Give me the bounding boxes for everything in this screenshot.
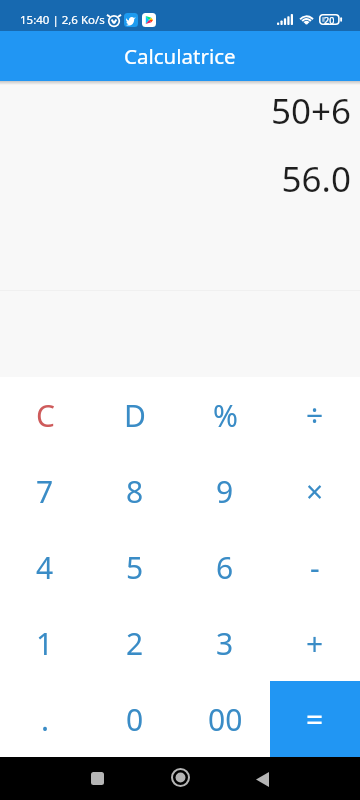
button[interactable]: 6 [180, 529, 270, 605]
button[interactable]: 00 [180, 681, 270, 757]
staticText: 4 [36, 547, 54, 588]
staticText: × [306, 471, 324, 512]
staticText: % [213, 395, 238, 436]
button[interactable]: D [90, 377, 180, 453]
staticText: 00 [208, 699, 243, 740]
staticText: 15:40 | 2,6 Ko/s [20, 12, 105, 28]
button[interactable]: 4 [0, 529, 90, 605]
staticText: D [124, 395, 146, 436]
button[interactable]: 8 [90, 453, 180, 529]
staticText: = [306, 699, 324, 740]
button[interactable]: Recent apps [75, 757, 119, 800]
button[interactable]: 2 [90, 605, 180, 681]
button[interactable]: Back [240, 757, 284, 800]
staticText: 7 [36, 471, 54, 512]
staticText: 6 [216, 547, 234, 588]
staticText: Calculatrice [124, 42, 236, 70]
staticText: C [36, 395, 55, 436]
button[interactable]: + [270, 605, 360, 681]
staticText: 50+6 [0, 87, 351, 135]
staticText: ÷ [306, 395, 324, 436]
button[interactable]: % [180, 377, 270, 453]
staticText: 20 [324, 14, 335, 25]
button[interactable]: ÷ [270, 377, 360, 453]
button[interactable]: - [270, 529, 360, 605]
button[interactable]: 5 [90, 529, 180, 605]
staticText: + [306, 623, 324, 664]
staticText: 2 [126, 623, 144, 664]
staticText: . [41, 699, 50, 740]
staticText: 0 [126, 699, 144, 740]
button[interactable]: 0 [90, 681, 180, 757]
button[interactable]: 9 [180, 453, 270, 529]
staticText: 9 [216, 471, 234, 512]
button[interactable]: = [270, 681, 360, 757]
button[interactable]: 7 [0, 453, 90, 529]
staticText: 1 [36, 623, 54, 664]
button[interactable]: Calculatrice [0, 31, 360, 81]
button[interactable]: C [0, 377, 90, 453]
staticText: 56.0 [0, 155, 351, 203]
button[interactable]: Home [158, 757, 202, 800]
button[interactable]: 1 [0, 605, 90, 681]
staticText: - [310, 547, 320, 588]
button[interactable]: 3 [180, 605, 270, 681]
staticText: 5 [126, 547, 144, 588]
staticText: 8 [126, 471, 144, 512]
staticText: 3 [216, 623, 234, 664]
button[interactable]: . [0, 681, 90, 757]
button[interactable]: × [270, 453, 360, 529]
